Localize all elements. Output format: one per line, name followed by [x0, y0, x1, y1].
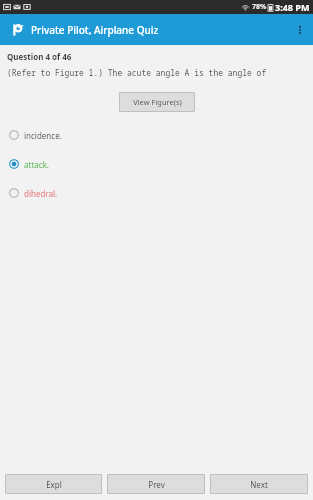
button[interactable]: Next — [210, 474, 308, 494]
staticText: (Refer to Figure 1.) The acute angle A i… — [7, 67, 267, 78]
button[interactable]: dihedral. — [0, 185, 313, 201]
button[interactable]: More options — [287, 14, 313, 45]
button[interactable]: Expl — [5, 474, 102, 494]
staticText: 3:48 PM — [275, 1, 310, 13]
staticText: attack. — [24, 159, 50, 170]
staticText: dihedral. — [24, 188, 58, 199]
staticText: incidence. — [24, 130, 62, 141]
button[interactable]: attack. — [0, 156, 313, 172]
button[interactable]: incidence. — [0, 127, 313, 143]
staticText: View Figure(s) — [133, 97, 182, 107]
button[interactable]: View Figure(s) — [119, 92, 195, 112]
staticText: Question 4 of 46 — [7, 51, 72, 62]
staticText: Next — [250, 479, 268, 490]
staticText: Expl — [46, 479, 62, 490]
button[interactable]: Prev — [107, 474, 205, 494]
staticText: 78% — [252, 2, 267, 12]
staticText: Prev — [148, 479, 165, 490]
staticText: Private Pilot, Airplane Quiz — [31, 23, 159, 37]
